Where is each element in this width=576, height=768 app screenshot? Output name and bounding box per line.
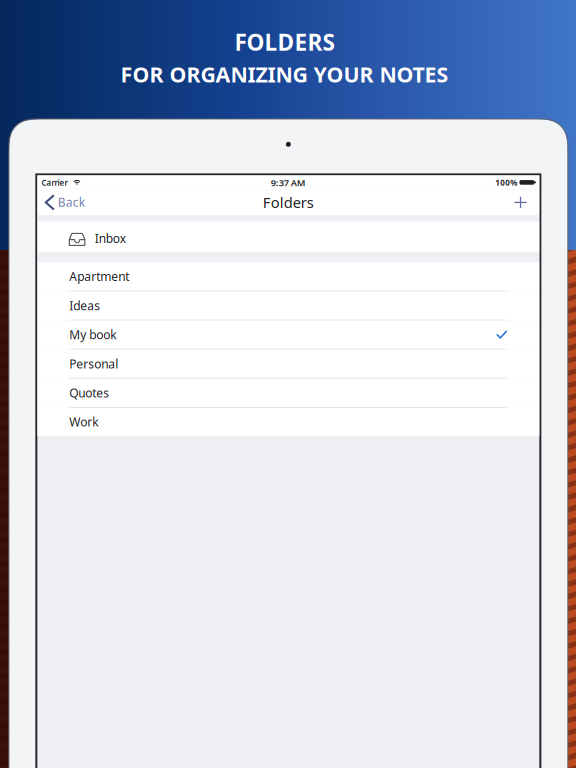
button[interactable]: My book [37, 321, 539, 350]
staticText: Work [69, 414, 98, 430]
staticText: Quotes [69, 385, 109, 401]
button[interactable]: Personal [37, 350, 539, 379]
staticText: Personal [69, 356, 118, 372]
staticText: Inbox [95, 230, 126, 246]
staticText: Apartment [69, 268, 129, 284]
staticText: FOR ORGANIZING YOUR NOTES [120, 60, 448, 88]
staticText: 9:37 AM [271, 176, 306, 189]
button[interactable]: Work [37, 408, 539, 436]
button[interactable]: Inbox [37, 221, 539, 252]
button[interactable]: Apartment [37, 262, 539, 291]
button[interactable]: New folder [505, 191, 539, 214]
staticText: My book [69, 327, 116, 343]
staticText: Folders [263, 193, 314, 212]
button[interactable]: Quotes [37, 379, 539, 408]
staticText: Ideas [69, 298, 100, 313]
button[interactable]: Back [37, 189, 93, 216]
button[interactable]: Ideas [37, 291, 539, 321]
staticText: 100% [495, 177, 517, 188]
staticText: Back [58, 194, 85, 210]
staticText: Carrier [41, 177, 67, 188]
staticText: FOLDERS [234, 27, 334, 57]
